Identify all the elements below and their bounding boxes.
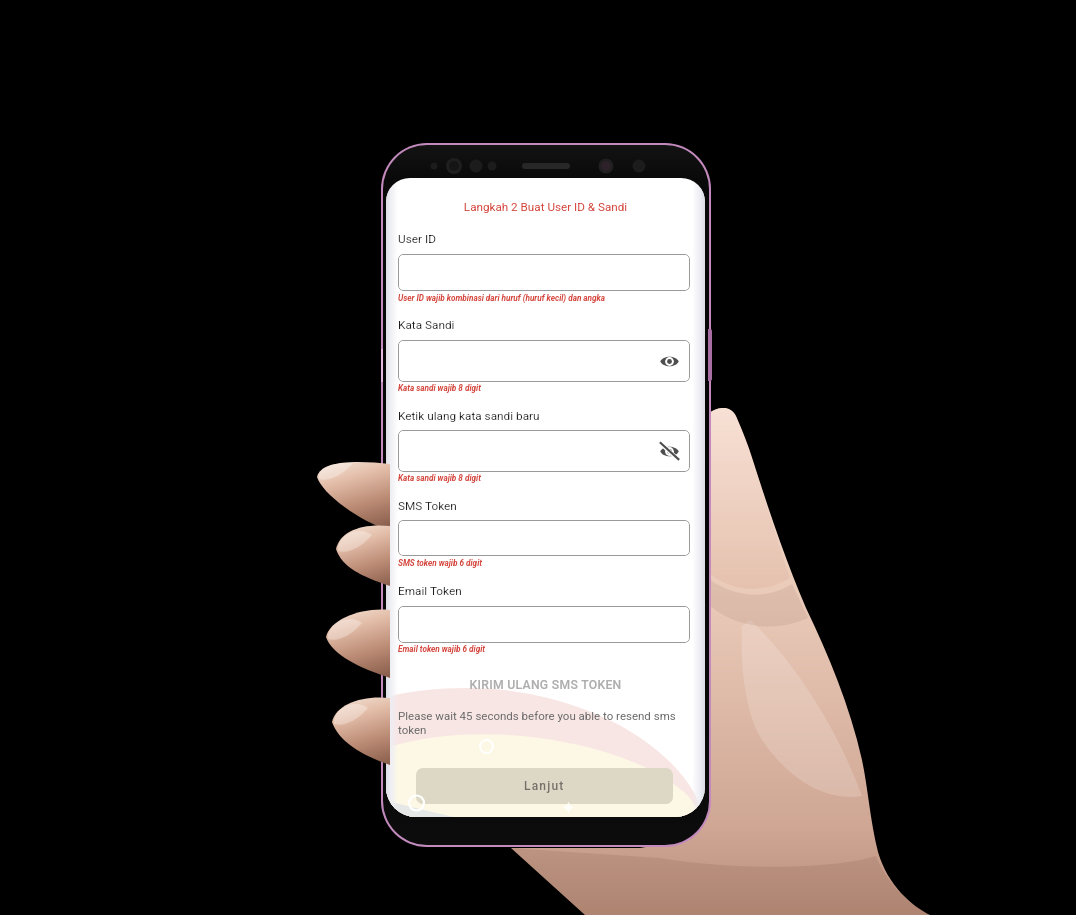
staticText: Kata sandi wajib 8 digit [398,383,481,393]
button[interactable]: Show password [659,351,680,372]
staticText: Lanjut [524,779,565,793]
staticText: Ketik ulang kata sandi baru [398,409,540,423]
button[interactable] [398,254,690,291]
staticText: SMS Token [398,499,457,513]
button[interactable] [398,606,690,643]
staticText: User ID [398,232,436,246]
staticText: Please wait 45 seconds before you able t… [398,709,682,737]
button[interactable] [398,520,690,556]
staticText: KIRIM ULANG SMS TOKEN [386,678,705,692]
button[interactable]: KIRIM ULANG SMS TOKEN [386,678,705,692]
button[interactable]: Lanjut [416,768,673,804]
staticText: Email Token [398,584,462,598]
button[interactable]: Hide password [398,430,690,472]
staticText: Langkah 2 Buat User ID & Sandi [386,200,705,214]
staticText: Email token wajib 6 digit [398,644,485,654]
staticText: Kata Sandi [398,318,455,332]
button[interactable]: Power [708,329,712,381]
button[interactable]: Hide password [659,441,680,462]
staticText: SMS token wajib 6 digit [398,558,482,568]
staticText: User ID wajib kombinasi dari huruf (huru… [398,293,606,303]
button[interactable]: Show password [398,340,690,382]
staticText: Kata sandi wajib 8 digit [398,473,481,483]
